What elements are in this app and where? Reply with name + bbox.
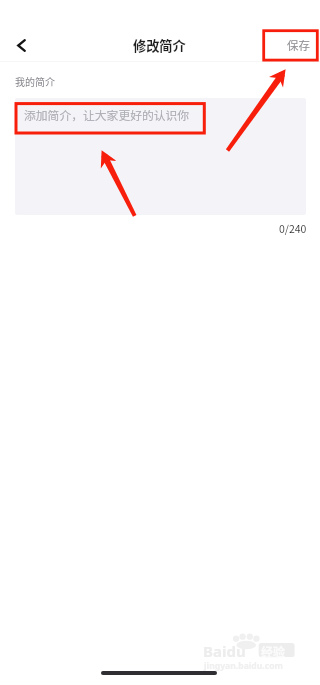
staticText: jingyan.baidu.com (204, 660, 283, 672)
staticText: 0/240 (279, 221, 307, 236)
button[interactable]: 保存 (280, 31, 316, 59)
button[interactable]: 添加简介，让大家更好的认识你 (15, 98, 306, 215)
staticText: 修改简介 (133, 36, 186, 55)
staticText: 添加简介，让大家更好的认识你 (24, 106, 190, 123)
staticText: 我的简介 (15, 74, 55, 88)
button[interactable]: Back (3, 27, 39, 63)
staticText: 保存 (287, 37, 310, 54)
staticText: Baidu (203, 641, 246, 661)
staticText: 经验 (261, 643, 286, 660)
